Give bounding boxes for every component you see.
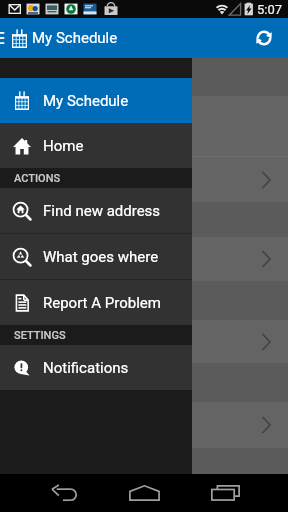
button[interactable]: Report A Problem — [0, 280, 192, 325]
staticText: SETTINGS — [14, 329, 66, 342]
button[interactable]: What goes where — [0, 234, 192, 279]
button[interactable]: My Schedule — [0, 78, 192, 123]
staticText: My Schedule — [43, 92, 129, 110]
button[interactable]: Notifications — [0, 345, 192, 390]
staticText: Find new address — [43, 202, 161, 220]
button[interactable]: Refresh — [244, 18, 284, 58]
button[interactable]: Open navigation drawer — [0, 18, 5, 58]
button[interactable]: Home — [122, 474, 167, 512]
button[interactable] — [0, 320, 288, 363]
button[interactable]: Recent apps — [203, 474, 248, 512]
button[interactable] — [0, 157, 288, 202]
button[interactable] — [0, 402, 288, 448]
staticText: What goes where — [43, 248, 159, 266]
button[interactable]: Home — [0, 123, 192, 168]
staticText: ACTIONS — [14, 172, 61, 185]
button[interactable]: Back — [41, 474, 86, 512]
button[interactable]: Find new address — [0, 188, 192, 233]
staticText: Report A Problem — [43, 294, 161, 312]
staticText: 5:07 — [257, 2, 283, 17]
staticText: Notifications — [43, 359, 129, 377]
button[interactable] — [0, 237, 288, 281]
staticText: Home — [43, 137, 84, 155]
staticText: My Schedule — [32, 29, 118, 47]
